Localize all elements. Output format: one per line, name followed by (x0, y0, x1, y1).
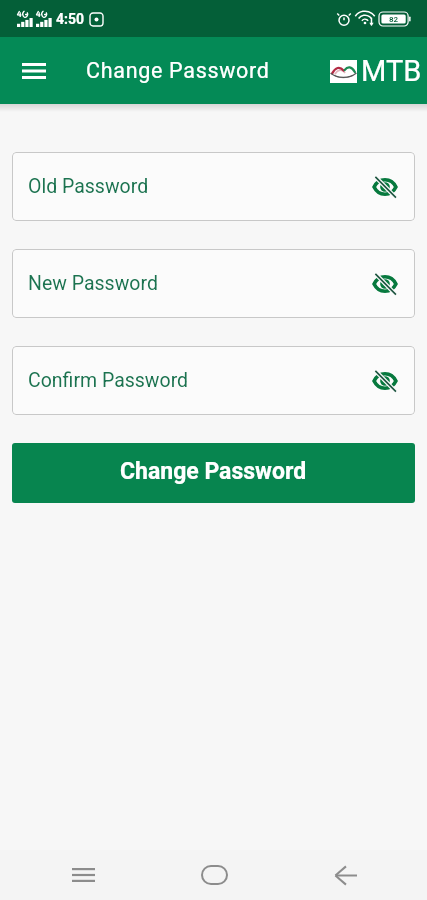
button[interactable]: Back (321, 851, 369, 899)
button[interactable]: MTB logo (330, 54, 422, 88)
staticText: 4:50 (56, 11, 85, 27)
staticText: Confirm Password (28, 369, 189, 392)
staticText: Old Password (28, 175, 149, 198)
staticText: Change Password (120, 458, 307, 485)
button[interactable]: Open navigation menu (10, 47, 58, 95)
button[interactable]: Old Password (12, 152, 415, 221)
button[interactable]: Home (190, 851, 238, 899)
button[interactable]: Recents (59, 851, 107, 899)
staticText: MTB (361, 54, 422, 88)
button[interactable]: Show password (367, 169, 403, 205)
button[interactable]: Show password (367, 363, 403, 399)
staticText: New Password (28, 272, 158, 295)
button[interactable]: New Password (12, 249, 415, 318)
button[interactable]: Show password (367, 266, 403, 302)
staticText: Change Password (86, 58, 270, 83)
button[interactable]: Change Password (12, 443, 415, 503)
staticText: 82 (389, 15, 399, 24)
button[interactable]: Confirm Password (12, 346, 415, 415)
